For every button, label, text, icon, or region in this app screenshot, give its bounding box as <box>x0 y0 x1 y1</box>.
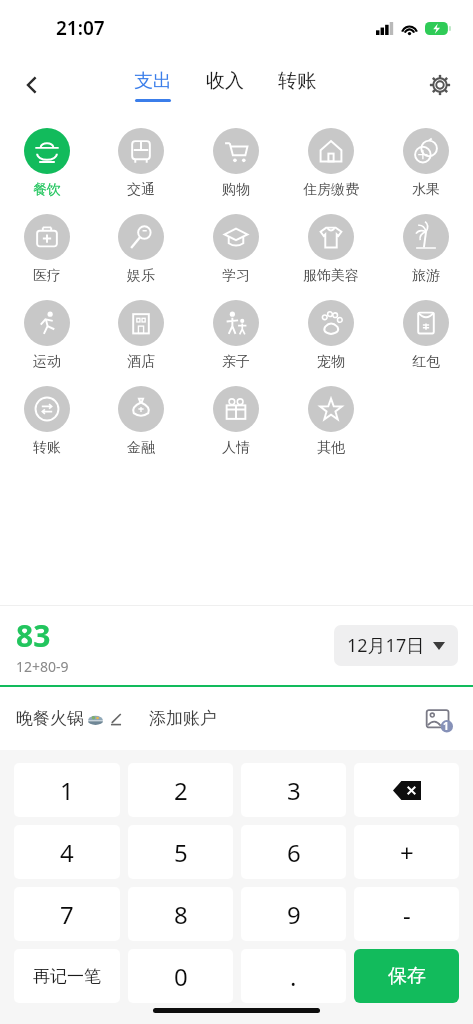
button[interactable]: 交通 <box>94 126 188 201</box>
button[interactable]: Add photo <box>419 699 459 739</box>
button[interactable]: 5 <box>128 825 233 879</box>
staticText: 2 <box>174 774 188 807</box>
staticText: 1 <box>60 774 74 807</box>
staticText: 5 <box>174 836 188 869</box>
button[interactable]: 7 <box>14 887 120 941</box>
staticText: - <box>403 898 411 931</box>
staticText: 晚餐火锅 <box>16 708 84 729</box>
staticText: 1 <box>443 719 449 733</box>
button[interactable]: 餐饮 <box>0 126 94 201</box>
staticText: 酒店 <box>127 353 155 371</box>
button[interactable]: 住房缴费 <box>283 126 378 201</box>
staticText: 转账 <box>278 69 316 93</box>
button[interactable]: 酒店 <box>94 298 188 373</box>
button[interactable]: 9 <box>241 887 346 941</box>
button[interactable]: Settings <box>417 62 463 108</box>
button[interactable]: 晚餐火锅 <box>16 702 123 735</box>
staticText: 4 <box>60 836 74 869</box>
staticText: 21:07 <box>56 15 105 41</box>
button[interactable]: 运动 <box>0 298 94 373</box>
button[interactable]: 1 <box>14 763 120 817</box>
button[interactable]: 支出 <box>130 67 176 104</box>
button[interactable]: Back <box>8 61 56 109</box>
button[interactable]: + <box>354 825 459 879</box>
staticText: 保存 <box>388 964 426 988</box>
staticText: 运动 <box>33 353 61 371</box>
staticText: 添加账户 <box>149 708 217 729</box>
button[interactable]: 宠物 <box>283 298 378 373</box>
staticText: 12月17日 <box>347 633 425 658</box>
button[interactable]: 学习 <box>188 212 283 287</box>
button[interactable]: 4 <box>14 825 120 879</box>
staticText: . <box>290 960 297 993</box>
staticText: 3 <box>287 774 301 807</box>
staticText: 学习 <box>222 267 250 285</box>
button[interactable]: 购物 <box>188 126 283 201</box>
staticText: 服饰美容 <box>303 267 359 285</box>
staticText: 交通 <box>127 181 155 199</box>
staticText: 医疗 <box>33 267 61 285</box>
staticText: 83 <box>16 615 51 656</box>
button[interactable]: 8 <box>128 887 233 941</box>
staticText: 旅游 <box>412 267 440 285</box>
staticText: 收入 <box>206 69 244 93</box>
staticText: 购物 <box>222 181 250 199</box>
staticText: 水果 <box>412 181 440 199</box>
button[interactable]: 人情 <box>188 384 283 459</box>
button[interactable]: 再记一笔 <box>14 949 120 1003</box>
button[interactable]: 红包 <box>378 298 473 373</box>
button[interactable]: 旅游 <box>378 212 473 287</box>
staticText: 住房缴费 <box>303 181 359 199</box>
button[interactable]: Delete <box>354 763 459 817</box>
button[interactable]: 添加账户 <box>147 702 219 735</box>
staticText: 7 <box>60 898 74 931</box>
button[interactable]: 服饰美容 <box>283 212 378 287</box>
staticText: 娱乐 <box>127 267 155 285</box>
staticText: 0 <box>174 960 188 993</box>
staticText: 餐饮 <box>33 181 61 199</box>
staticText: 再记一笔 <box>33 966 101 987</box>
button[interactable]: 3 <box>241 763 346 817</box>
button[interactable]: 亲子 <box>188 298 283 373</box>
staticText: 支出 <box>134 69 172 93</box>
staticText: 亲子 <box>222 353 250 371</box>
staticText: 红包 <box>412 353 440 371</box>
staticText: 9 <box>287 898 301 931</box>
button[interactable]: 转账 <box>274 67 320 104</box>
button[interactable]: 金融 <box>94 384 188 459</box>
button[interactable]: 转账 <box>0 384 94 459</box>
button[interactable]: 6 <box>241 825 346 879</box>
button[interactable]: 保存 <box>354 949 459 1003</box>
staticText: 宠物 <box>317 353 345 371</box>
button[interactable]: . <box>241 949 346 1003</box>
button[interactable]: 水果 <box>378 126 473 201</box>
staticText: 金融 <box>127 439 155 457</box>
button[interactable]: 收入 <box>202 67 248 104</box>
staticText: + <box>400 836 414 869</box>
staticText: 6 <box>287 836 301 869</box>
button[interactable]: - <box>354 887 459 941</box>
staticText: 人情 <box>222 439 250 457</box>
button[interactable]: 12月17日 <box>334 625 458 666</box>
button[interactable]: 其他 <box>283 384 378 459</box>
staticText: 其他 <box>317 439 345 457</box>
button[interactable]: 医疗 <box>0 212 94 287</box>
staticText: 12+80-9 <box>16 657 69 676</box>
staticText: 8 <box>174 898 188 931</box>
button[interactable]: 2 <box>128 763 233 817</box>
button[interactable]: 娱乐 <box>94 212 188 287</box>
button[interactable]: 0 <box>128 949 233 1003</box>
staticText: 转账 <box>33 439 61 457</box>
